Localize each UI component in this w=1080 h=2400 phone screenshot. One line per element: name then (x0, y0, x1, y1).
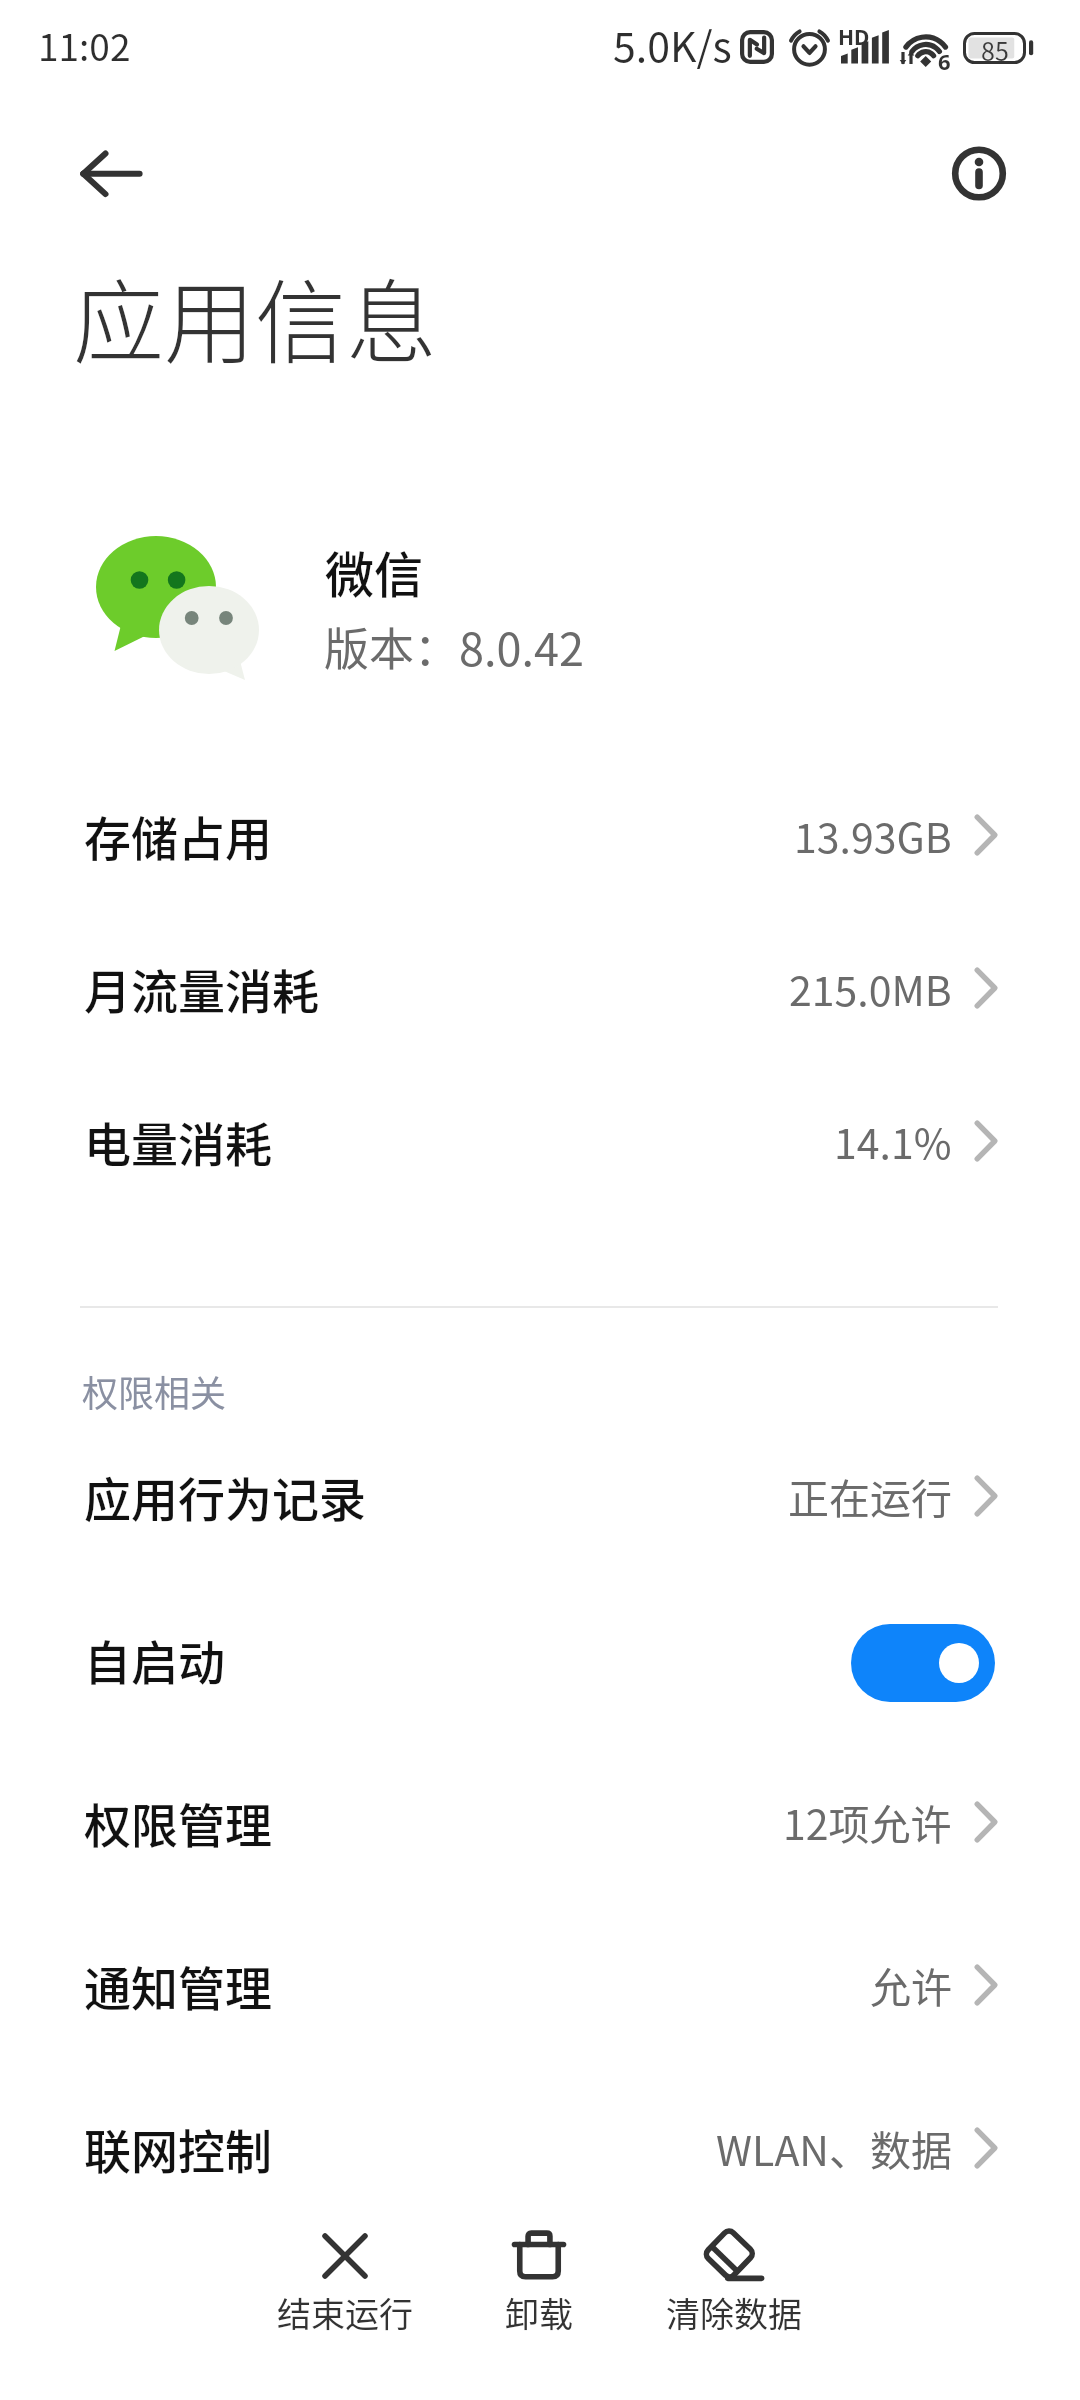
staticText: 自启动 (84, 1625, 225, 1693)
button[interactable]: 通知管理 (0, 1903, 1080, 2066)
staticText: 权限管理 (84, 1788, 272, 1856)
staticText: HD (838, 23, 870, 52)
staticText: 月流量消耗 (84, 954, 319, 1022)
button[interactable]: 清除数据 (624, 2210, 844, 2360)
staticText: WLAN、数据 (716, 2118, 952, 2177)
button[interactable]: 卸载 (429, 2210, 649, 2360)
button[interactable]: 自启动 on (851, 1624, 995, 1702)
staticText: 微信 (325, 536, 424, 607)
staticText: 清除数据 (666, 2288, 802, 2337)
button[interactable]: 联网控制 (0, 2066, 1080, 2229)
staticText: 电量消耗 (84, 1107, 272, 1175)
staticText: 11:02 (38, 18, 131, 72)
staticText: 权限相关 (82, 1365, 227, 1417)
staticText: 6 (938, 46, 951, 76)
staticText: 14.1% (834, 1111, 952, 1170)
button[interactable]: 权限管理 (0, 1740, 1080, 1903)
staticText: 5.0K/s (613, 14, 732, 73)
button[interactable]: 月流量消耗 (0, 911, 1080, 1064)
staticText: 12项允许 (783, 1792, 952, 1851)
button[interactable]: 结束运行 (235, 2210, 455, 2360)
button[interactable]: 自启动 (0, 1577, 1080, 1740)
staticText: 允许 (870, 1955, 952, 2014)
staticText: 版本：8.0.42 (324, 614, 584, 679)
staticText: 存储占用 (84, 801, 272, 869)
button[interactable]: 应用行为记录 (0, 1414, 1080, 1577)
button[interactable]: Back (56, 120, 166, 228)
staticText: 正在运行 (788, 1466, 952, 1525)
staticText: 卸载 (505, 2288, 573, 2337)
staticText: 联网控制 (84, 2114, 272, 2182)
staticText: 215.0MB (789, 958, 952, 1017)
staticText: 结束运行 (277, 2288, 413, 2337)
staticText: 应用行为记录 (84, 1462, 366, 1530)
button[interactable]: 存储占用 (0, 758, 1080, 911)
button[interactable]: App details (942, 137, 1016, 211)
staticText: 13.93GB (794, 805, 952, 864)
staticText: 应用信息 (73, 250, 438, 382)
staticText: 85 (981, 32, 1009, 68)
staticText: 通知管理 (84, 1951, 272, 2019)
button[interactable]: 电量消耗 (0, 1064, 1080, 1217)
